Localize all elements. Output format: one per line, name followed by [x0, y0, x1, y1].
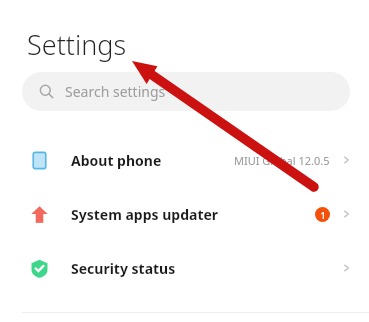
staticText: Settings [27, 26, 127, 63]
staticText: Search settings [65, 82, 166, 101]
staticText: Security status [71, 259, 176, 278]
staticText: System apps updater [71, 205, 219, 224]
button[interactable]: Security status [0, 241, 369, 295]
button[interactable]: About phone [0, 133, 369, 187]
staticText: 1 [320, 209, 326, 221]
button[interactable]: System apps updater [0, 187, 369, 241]
staticText: About phone [71, 151, 162, 170]
staticText: MIUI Global 12.0.5 [234, 153, 330, 168]
button[interactable]: Search settings [22, 72, 350, 111]
